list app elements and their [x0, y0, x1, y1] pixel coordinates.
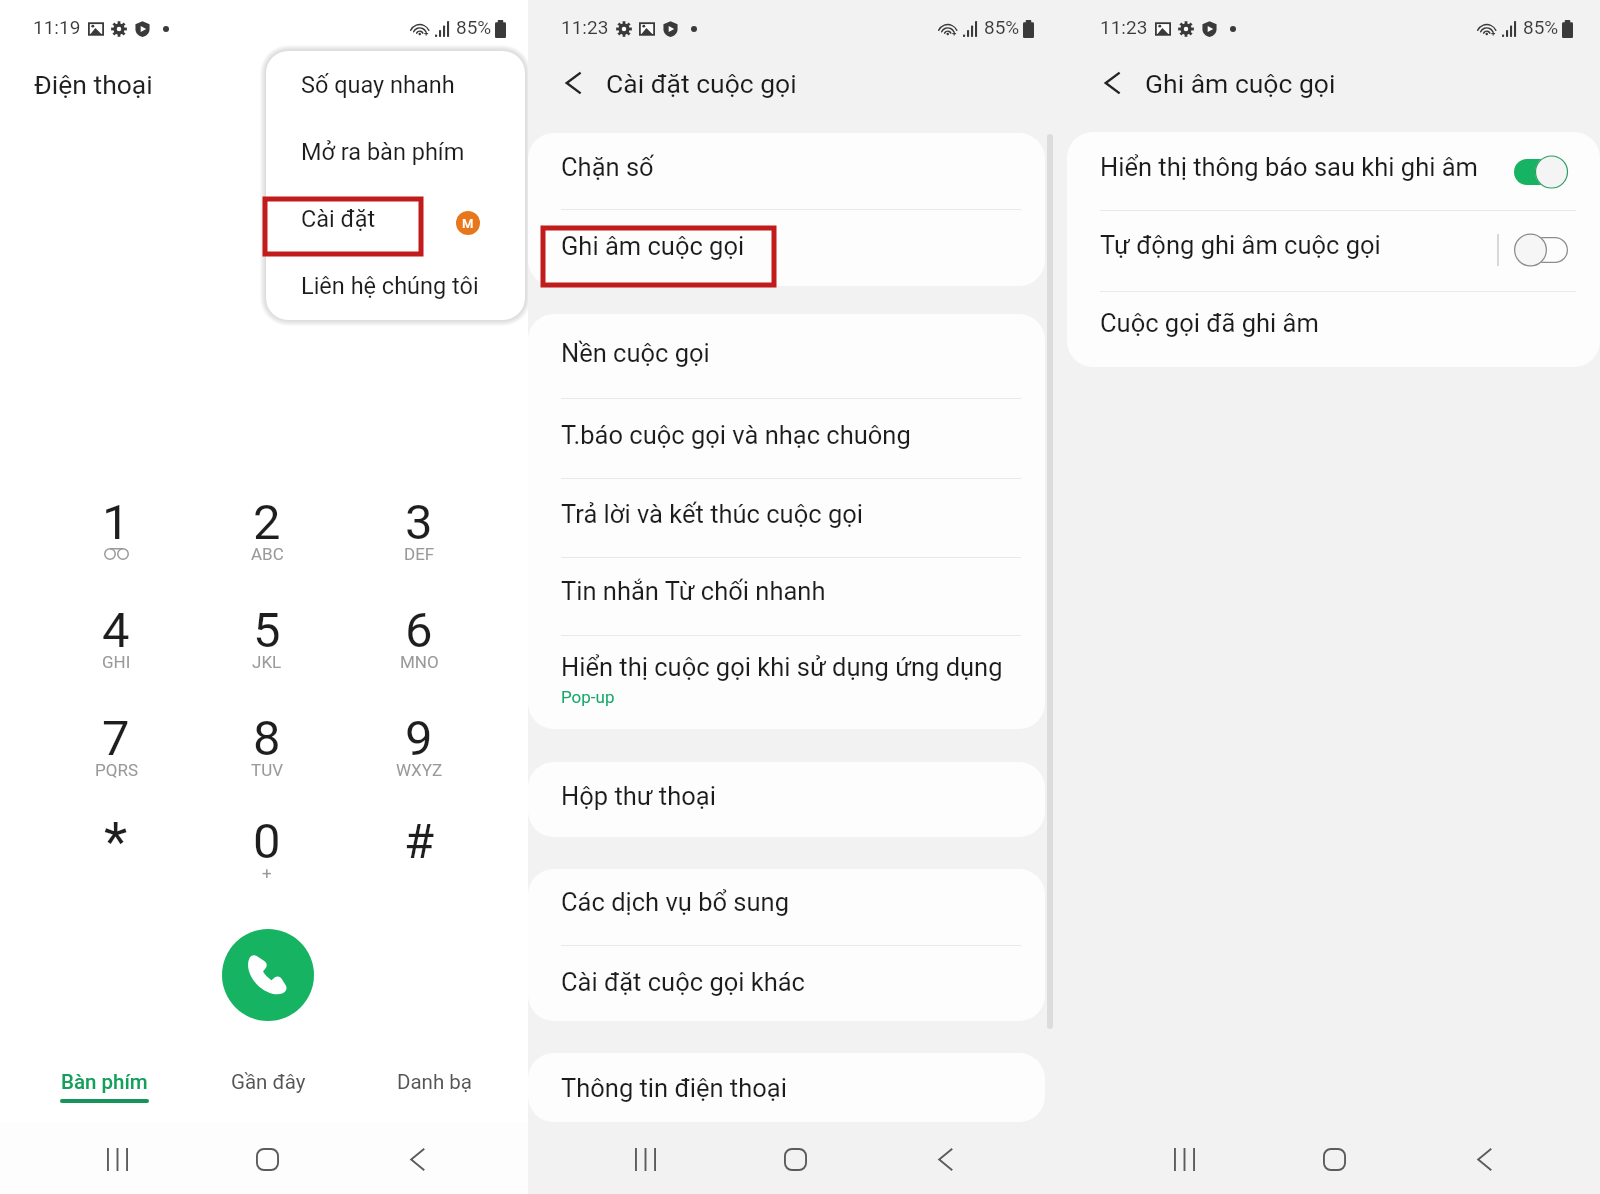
button[interactable]: # — [344, 791, 494, 891]
staticText: Cuộc gọi đã ghi âm — [1100, 308, 1319, 338]
staticText: DEF — [404, 544, 435, 564]
staticText: Số quay nhanh — [301, 71, 455, 99]
staticText: Pop-up — [561, 687, 615, 707]
staticText: 6 — [405, 602, 433, 659]
staticText: Cài đặt cuộc gọi — [606, 68, 797, 99]
staticText: 11:19 — [33, 16, 81, 38]
button[interactable]: Cài đặt cuộc gọi khác — [528, 945, 1045, 1021]
button[interactable]: Hiển thị cuộc gọi khi sử dụng ứng dụng — [528, 635, 1045, 729]
staticText: Ghi âm cuộc gọi — [561, 231, 745, 261]
button[interactable]: 4 — [41, 580, 191, 680]
staticText: 85% — [1523, 16, 1559, 38]
staticText: T.báo cuộc gọi và nhạc chuông — [561, 420, 911, 450]
button[interactable]: Gần đây — [188, 1060, 348, 1112]
button[interactable]: Recents — [1156, 1131, 1212, 1187]
button[interactable]: Home — [239, 1131, 295, 1187]
staticText: 85% — [984, 16, 1020, 38]
staticText: GHI — [102, 652, 131, 672]
staticText: Ghi âm cuộc gọi — [1145, 68, 1336, 99]
button[interactable]: Samsung account — [456, 211, 480, 235]
button[interactable]: Back — [1087, 58, 1137, 108]
button[interactable]: 0 — [192, 791, 342, 891]
staticText: 2 — [253, 494, 281, 551]
button[interactable]: Chặn số — [528, 133, 1045, 209]
button[interactable]: Trả lời và kết thúc cuộc gọi — [528, 478, 1045, 557]
button[interactable]: Call — [222, 929, 314, 1021]
staticText: # — [404, 813, 435, 870]
staticText: Gần đây — [231, 1070, 306, 1094]
staticText: 85% — [456, 16, 492, 38]
button[interactable]: Số quay nhanh — [266, 51, 525, 118]
staticText: 8 — [253, 710, 281, 767]
staticText: M — [462, 216, 474, 231]
staticText: Nền cuộc gọi — [561, 338, 710, 368]
button[interactable]: 6 — [344, 580, 494, 680]
staticText: Hộp thư thoại — [561, 781, 716, 811]
staticText: Cài đặt cuộc gọi khác — [561, 967, 805, 997]
button[interactable]: Nền cuộc gọi — [528, 314, 1045, 398]
staticText: Mở ra bàn phím — [301, 138, 465, 166]
staticText: PQRS — [95, 760, 138, 780]
button[interactable]: Recents — [89, 1131, 145, 1187]
staticText: 1 — [102, 494, 130, 551]
staticText: Thông tin điện thoại — [561, 1073, 787, 1103]
button[interactable]: 7 — [41, 688, 191, 788]
staticText: MNO — [400, 652, 439, 672]
staticText: TUV — [251, 760, 283, 780]
staticText: 0 — [253, 813, 281, 870]
button[interactable]: 9 — [344, 688, 494, 788]
staticText: Hiển thị cuộc gọi khi sử dụng ứng dụng — [561, 652, 1003, 682]
button[interactable]: Hiển thị thông báo sau khi ghi âm, on — [1067, 132, 1600, 210]
staticText: + — [262, 863, 272, 883]
staticText: WXYZ — [396, 760, 443, 780]
staticText: Liên hệ chúng tôi — [301, 272, 479, 300]
button[interactable]: Các dịch vụ bổ sung — [528, 869, 1045, 945]
button[interactable]: Cài đặt — [266, 185, 525, 252]
button[interactable]: Bàn phím — [24, 1060, 184, 1112]
staticText: 7 — [102, 710, 130, 767]
button[interactable]: Thông tin điện thoại — [528, 1053, 1045, 1122]
button[interactable]: Back — [389, 1131, 445, 1187]
button[interactable]: 8 — [192, 688, 342, 788]
button[interactable]: Tin nhắn Từ chối nhanh — [528, 557, 1045, 635]
button[interactable]: Mở ra bàn phím — [266, 118, 525, 185]
staticText: 9 — [405, 710, 433, 767]
staticText: Tự động ghi âm cuộc gọi — [1100, 230, 1381, 260]
button[interactable]: Back — [917, 1131, 973, 1187]
staticText: Hiển thị thông báo sau khi ghi âm — [1100, 152, 1478, 182]
button[interactable]: Cuộc gọi đã ghi âm — [1067, 291, 1600, 367]
staticText: JKL — [252, 652, 282, 672]
button[interactable]: Liên hệ chúng tôi — [266, 252, 525, 319]
staticText: Tin nhắn Từ chối nhanh — [561, 576, 826, 606]
staticText: Các dịch vụ bổ sung — [561, 887, 789, 917]
button[interactable]: 2 — [192, 472, 342, 572]
button[interactable]: Tự động ghi âm cuộc gọi, off — [1067, 210, 1600, 291]
staticText: 4 — [102, 602, 130, 659]
staticText: Trả lời và kết thúc cuộc gọi — [561, 499, 863, 529]
button[interactable]: Home — [767, 1131, 823, 1187]
button[interactable]: Back — [1456, 1131, 1512, 1187]
button[interactable]: * — [41, 791, 191, 891]
staticText: 11:23 — [1100, 16, 1148, 38]
staticText: * — [104, 810, 128, 873]
staticText: ABC — [251, 544, 284, 564]
staticText: Cài đặt — [301, 205, 376, 233]
staticText: Danh bạ — [397, 1070, 472, 1094]
button[interactable]: Recents — [617, 1131, 673, 1187]
button[interactable]: Ghi âm cuộc gọi — [528, 209, 1045, 286]
staticText: Chặn số — [561, 152, 654, 182]
button[interactable]: T.báo cuộc gọi và nhạc chuông — [528, 398, 1045, 478]
button[interactable]: 1 — [41, 472, 191, 572]
staticText: Bàn phím — [61, 1070, 148, 1094]
button[interactable]: Home — [1306, 1131, 1362, 1187]
staticText: 3 — [405, 494, 433, 551]
button[interactable]: Back — [548, 58, 598, 108]
button[interactable]: Danh bạ — [354, 1060, 514, 1112]
staticText: Điện thoại — [34, 69, 153, 100]
staticText: 5 — [253, 602, 281, 659]
button[interactable]: 3 — [344, 472, 494, 572]
button[interactable]: 5 — [192, 580, 342, 680]
staticText: 11:23 — [561, 16, 609, 38]
button[interactable]: Hộp thư thoại — [528, 762, 1045, 837]
